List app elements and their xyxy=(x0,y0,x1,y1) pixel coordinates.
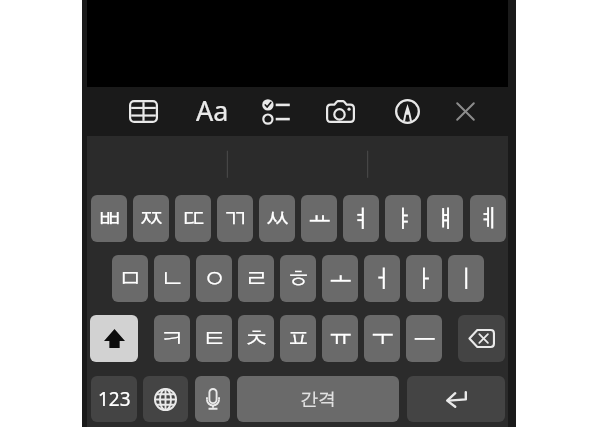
staticText: ㅖ xyxy=(476,203,501,234)
staticText: ㅊ xyxy=(244,323,269,354)
button[interactable]: ㄲ xyxy=(217,195,253,242)
staticText: ㅕ xyxy=(349,203,374,234)
button[interactable]: ㄴ xyxy=(154,255,190,302)
button[interactable]: ㅕ xyxy=(343,195,379,242)
staticText: 123 xyxy=(98,386,131,412)
button[interactable]: ㅖ xyxy=(470,195,506,242)
button[interactable]: Text formatting xyxy=(185,87,237,136)
button[interactable]: ㅛ xyxy=(301,195,337,242)
button[interactable]: ㄸ xyxy=(175,195,211,242)
button[interactable]: ㅎ xyxy=(280,255,316,302)
button[interactable]: Insert table xyxy=(117,87,169,136)
staticText: ㅒ xyxy=(433,203,458,234)
button[interactable]: Camera xyxy=(314,87,366,136)
button[interactable]: Enter xyxy=(407,376,505,422)
staticText: ㅠ xyxy=(328,318,353,349)
button[interactable]: ㅍ xyxy=(280,315,316,362)
button[interactable]: ㅉ xyxy=(133,195,169,242)
staticText: Aa xyxy=(196,92,229,129)
staticText: ㄹ xyxy=(244,263,269,294)
button[interactable]: ㄹ xyxy=(238,255,274,302)
button[interactable]: ㅋ xyxy=(154,315,190,362)
staticText: ㅛ xyxy=(307,198,332,229)
staticText: ㅡ xyxy=(412,317,437,348)
button[interactable]: ㅃ xyxy=(91,195,127,242)
staticText: ㄸ xyxy=(181,203,206,234)
staticText: ㄴ xyxy=(160,263,185,294)
button[interactable]: Voice input xyxy=(195,376,230,422)
button[interactable]: ㅣ xyxy=(448,255,484,302)
button[interactable]: ㅇ xyxy=(196,255,232,302)
button[interactable]: Markup xyxy=(381,87,433,136)
staticText: ㅃ xyxy=(97,203,122,234)
button[interactable]: ㅓ xyxy=(364,255,400,302)
button[interactable]: Backspace xyxy=(458,315,505,362)
staticText: ㅌ xyxy=(202,323,227,354)
button[interactable]: ㅗ xyxy=(322,255,358,302)
staticText: ㅗ xyxy=(328,258,353,289)
button[interactable]: Checklist xyxy=(250,87,302,136)
button[interactable]: Change keyboard language xyxy=(143,376,188,422)
staticText: ㅁ xyxy=(118,263,143,294)
staticText: ㅉ xyxy=(139,203,164,234)
staticText: ㅇ xyxy=(202,263,227,294)
button[interactable]: ㅊ xyxy=(238,315,274,362)
staticText: ㅆ xyxy=(265,203,290,234)
button[interactable]: ㅠ xyxy=(322,315,358,362)
button[interactable]: Close keyboard xyxy=(439,87,491,136)
staticText: ㅍ xyxy=(286,323,311,354)
staticText: ㅜ xyxy=(370,318,395,349)
staticText: ㄲ xyxy=(223,203,248,234)
staticText: ㅣ xyxy=(454,263,479,294)
button[interactable]: 123 xyxy=(91,376,137,422)
staticText: ㅏ xyxy=(412,263,437,294)
button[interactable]: ㅒ xyxy=(427,195,463,242)
button[interactable]: ㅏ xyxy=(406,255,442,302)
button[interactable]: 간격 xyxy=(237,376,399,422)
staticText: 간격 xyxy=(300,388,336,411)
button[interactable]: ㅌ xyxy=(196,315,232,362)
button[interactable]: ㅜ xyxy=(364,315,400,362)
staticText: ㅓ xyxy=(370,263,395,294)
button[interactable]: ㅑ xyxy=(385,195,421,242)
staticText: ㅋ xyxy=(160,323,185,354)
button[interactable]: Shift xyxy=(90,315,138,362)
button[interactable]: ㅆ xyxy=(259,195,295,242)
staticText: ㅑ xyxy=(391,203,416,234)
button[interactable]: ㅁ xyxy=(112,255,148,302)
staticText: ㅎ xyxy=(286,263,311,294)
button[interactable]: ㅡ xyxy=(406,315,442,362)
